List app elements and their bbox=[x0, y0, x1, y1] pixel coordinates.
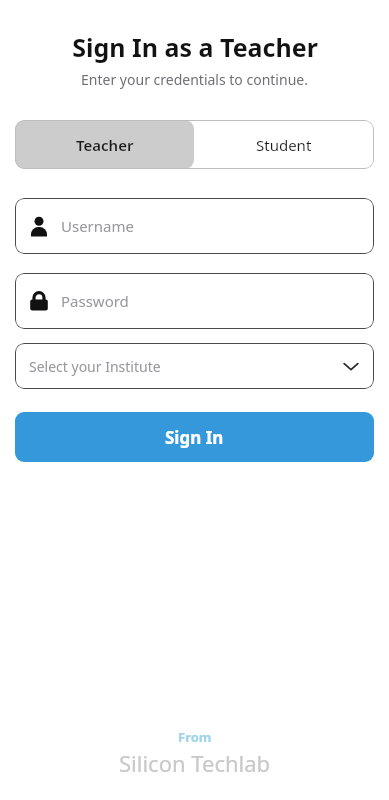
staticText: Select your Institute bbox=[29, 357, 342, 376]
staticText: Sign In as a Teacher bbox=[72, 30, 318, 64]
staticText: Silicon Techlab bbox=[119, 748, 271, 778]
other: Open institute list bbox=[342, 357, 360, 375]
staticText: Teacher bbox=[76, 135, 134, 155]
button[interactable]: Teacher bbox=[15, 120, 194, 169]
button[interactable]: Select your Institute bbox=[15, 343, 374, 389]
button[interactable]: Password bbox=[15, 273, 374, 329]
button[interactable]: Sign In bbox=[15, 412, 374, 462]
staticText: Enter your credentials to continue. bbox=[81, 70, 308, 89]
staticText: Password bbox=[61, 291, 129, 311]
other: Password bbox=[29, 291, 49, 311]
staticText: Sign In bbox=[165, 426, 224, 449]
other: Username bbox=[29, 216, 49, 236]
button[interactable]: Student bbox=[194, 120, 374, 169]
staticText: Student bbox=[256, 135, 312, 155]
staticText: Username bbox=[61, 216, 134, 236]
button[interactable]: Username bbox=[15, 198, 374, 254]
staticText: From bbox=[178, 728, 212, 746]
